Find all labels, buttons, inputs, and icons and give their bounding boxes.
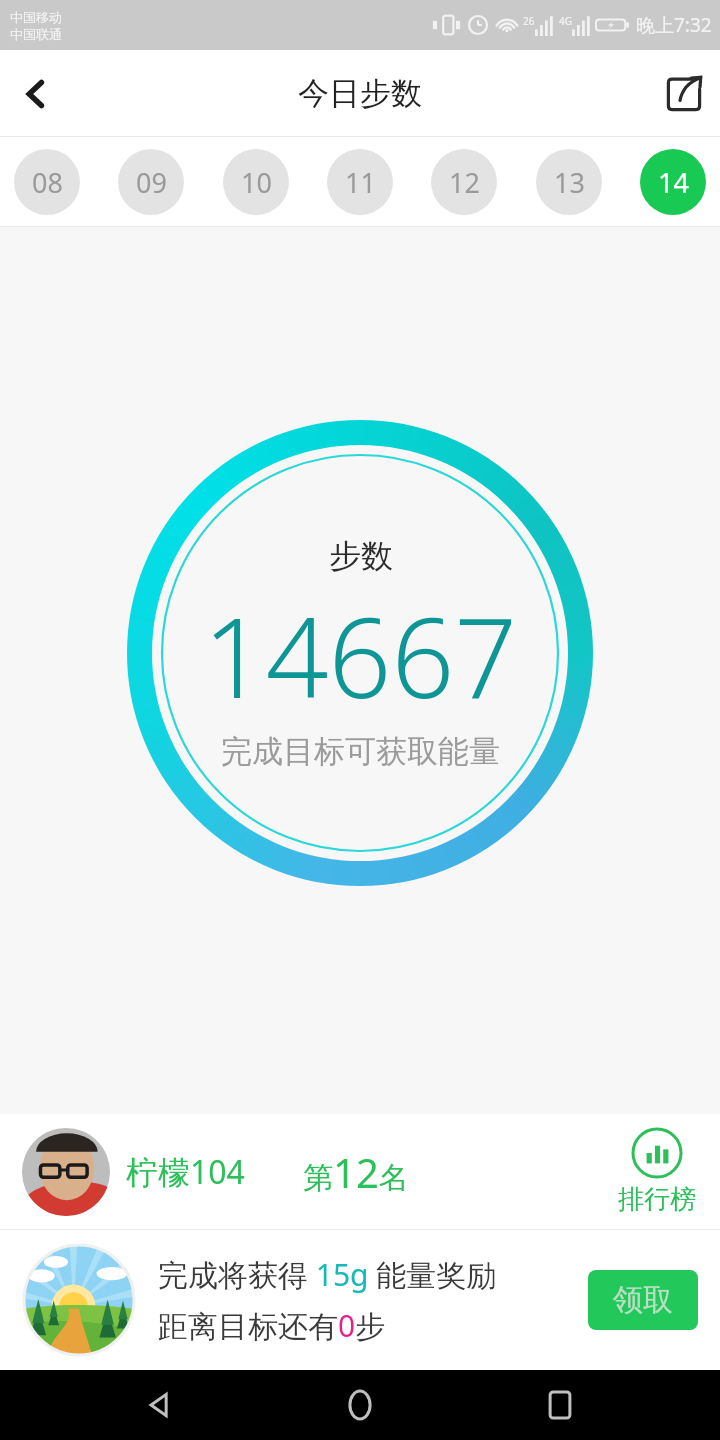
staticText: 中国联通: [10, 26, 62, 42]
staticText: 08: [32, 164, 63, 201]
button[interactable]: 08: [14, 149, 80, 215]
button[interactable]: Recent apps: [520, 1370, 600, 1440]
staticText: 完成目标可获取能量: [221, 732, 500, 771]
staticText: 4G: [559, 14, 572, 28]
staticText: 步数: [329, 536, 393, 576]
staticText: 11: [345, 164, 376, 201]
button[interactable]: Share: [648, 58, 720, 130]
button[interactable]: Back: [0, 58, 72, 130]
button[interactable]: 领取: [588, 1270, 698, 1330]
button[interactable]: 14: [640, 149, 706, 215]
button[interactable]: 柠檬104: [0, 1114, 720, 1229]
staticText: 距离目标还有0步: [158, 1305, 386, 1346]
staticText: 12: [449, 164, 480, 201]
button[interactable]: 10: [223, 149, 289, 215]
staticText: 柠檬104: [126, 1150, 245, 1194]
staticText: 完成将获得 15g 能量奖励: [158, 1254, 497, 1295]
button[interactable]: 11: [327, 149, 393, 215]
button[interactable]: 12: [431, 149, 497, 215]
staticText: 14667: [203, 580, 518, 730]
staticText: 晚上7:32: [636, 12, 712, 38]
button[interactable]: Back: [120, 1370, 200, 1440]
staticText: 10: [241, 164, 272, 201]
staticText: 26: [523, 14, 535, 28]
staticText: 09: [136, 164, 167, 201]
staticText: 第12名: [303, 1145, 409, 1199]
button[interactable]: 13: [536, 149, 602, 215]
button[interactable]: 09: [118, 149, 184, 215]
staticText: 中国移动: [10, 9, 62, 25]
staticText: 领取: [613, 1281, 673, 1319]
staticText: 14: [658, 164, 689, 201]
staticText: 13: [554, 164, 585, 201]
staticText: 今日步数: [298, 74, 422, 113]
button[interactable]: 排行榜: [614, 1127, 700, 1216]
staticText: 排行榜: [618, 1183, 696, 1216]
button[interactable]: Home: [320, 1370, 400, 1440]
